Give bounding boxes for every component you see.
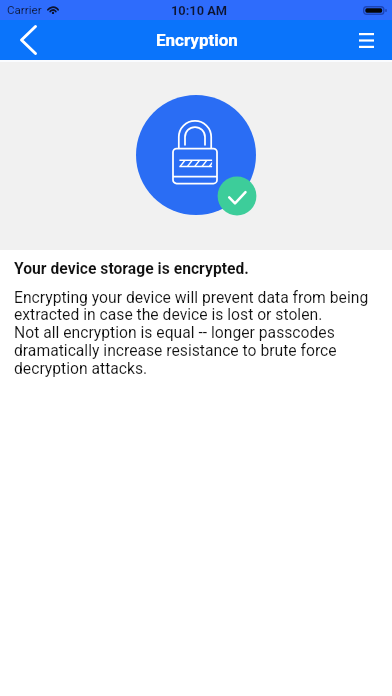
staticText: Encryption: [156, 30, 238, 50]
staticText: Your device storage is encrypted.: [14, 259, 249, 277]
button[interactable]: Back: [0, 20, 56, 60]
staticText: Encrypting your device will prevent data…: [14, 288, 381, 378]
staticText: 10:10 AM: [171, 3, 227, 18]
button[interactable]: Menu: [340, 20, 392, 60]
staticText: Carrier: [7, 3, 42, 17]
